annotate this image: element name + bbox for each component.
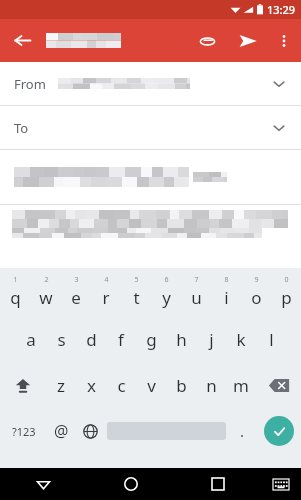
staticText: To — [14, 119, 29, 137]
button[interactable] — [0, 150, 301, 204]
staticText: m — [233, 374, 249, 397]
staticText: 0 — [284, 275, 289, 285]
staticText: g — [146, 328, 157, 351]
staticText: d — [86, 328, 97, 351]
button[interactable]: Back — [0, 468, 87, 500]
button[interactable]: a — [16, 316, 46, 362]
staticText: s — [57, 328, 66, 351]
button[interactable]: . — [228, 408, 257, 454]
button[interactable]: h — [166, 316, 196, 362]
button[interactable]: 3 — [61, 268, 91, 316]
button[interactable]: Done — [264, 416, 294, 446]
staticText: 2 — [44, 275, 49, 285]
staticText: v — [147, 374, 156, 397]
staticText: a — [26, 328, 36, 351]
staticText: y — [162, 286, 171, 309]
button[interactable]: s — [46, 316, 76, 362]
button[interactable]: To — [0, 106, 301, 149]
button[interactable]: Attach file — [187, 21, 227, 61]
button[interactable]: m — [226, 362, 256, 408]
staticText: o — [251, 286, 262, 309]
button[interactable]: From — [0, 62, 301, 105]
staticText: ?123 — [12, 424, 36, 439]
staticText: 8 — [224, 275, 229, 285]
button[interactable]: f — [106, 316, 136, 362]
button[interactable] — [0, 205, 301, 268]
staticText: @ — [54, 420, 69, 442]
button[interactable]: v — [136, 362, 166, 408]
button[interactable]: Shift — [0, 362, 46, 408]
staticText: 6 — [164, 275, 169, 285]
staticText: 4 — [104, 275, 109, 285]
staticText: z — [57, 374, 65, 397]
staticText: 13:29 — [267, 2, 296, 17]
button[interactable]: @ — [47, 408, 76, 454]
staticText: 9 — [254, 275, 259, 285]
staticText: j — [209, 328, 214, 351]
button[interactable]: 1 — [0, 268, 31, 316]
staticText: x — [87, 374, 96, 397]
staticText: r — [102, 286, 110, 309]
button[interactable]: Backspace — [256, 362, 301, 408]
button[interactable]: 9 — [241, 268, 271, 316]
button[interactable]: b — [166, 362, 196, 408]
staticText: t — [133, 286, 140, 309]
button[interactable]: l — [256, 316, 286, 362]
button[interactable]: z — [46, 362, 76, 408]
button[interactable]: Recent apps — [174, 468, 261, 500]
button[interactable]: 6 — [151, 268, 181, 316]
staticText: k — [236, 328, 246, 351]
staticText: h — [176, 328, 187, 351]
staticText: From — [14, 75, 46, 93]
staticText: 7 — [194, 275, 199, 285]
button[interactable]: n — [196, 362, 226, 408]
button[interactable]: d — [76, 316, 106, 362]
staticText: f — [118, 328, 124, 351]
button[interactable]: Switch keyboard — [261, 468, 301, 500]
button[interactable]: 4 — [91, 268, 121, 316]
button[interactable]: Change language — [76, 408, 105, 454]
button[interactable]: More options — [269, 26, 299, 56]
button[interactable]: 5 — [121, 268, 151, 316]
button[interactable]: j — [196, 316, 226, 362]
staticText: 3 — [74, 275, 79, 285]
staticText: n — [206, 374, 217, 397]
button[interactable]: Send — [227, 20, 269, 62]
staticText: b — [176, 374, 187, 397]
button[interactable]: ?123 — [0, 408, 47, 454]
button[interactable]: c — [106, 362, 136, 408]
staticText: i — [224, 286, 229, 309]
button[interactable]: 7 — [181, 268, 211, 316]
button[interactable]: Home — [87, 468, 174, 500]
button[interactable]: x — [76, 362, 106, 408]
button[interactable]: 8 — [211, 268, 241, 316]
staticText: q — [10, 286, 21, 309]
staticText: u — [191, 286, 202, 309]
staticText: c — [117, 374, 126, 397]
button[interactable]: Back — [0, 19, 44, 62]
staticText: 5 — [134, 275, 139, 285]
button[interactable]: g — [136, 316, 166, 362]
button[interactable]: k — [226, 316, 256, 362]
staticText: p — [281, 286, 292, 309]
button[interactable]: 0 — [271, 268, 301, 316]
staticText: 1 — [13, 275, 18, 285]
staticText: l — [269, 328, 274, 351]
staticText: . — [240, 421, 245, 441]
staticText: e — [71, 286, 81, 309]
button[interactable]: 2 — [31, 268, 61, 316]
staticText: w — [39, 286, 53, 309]
